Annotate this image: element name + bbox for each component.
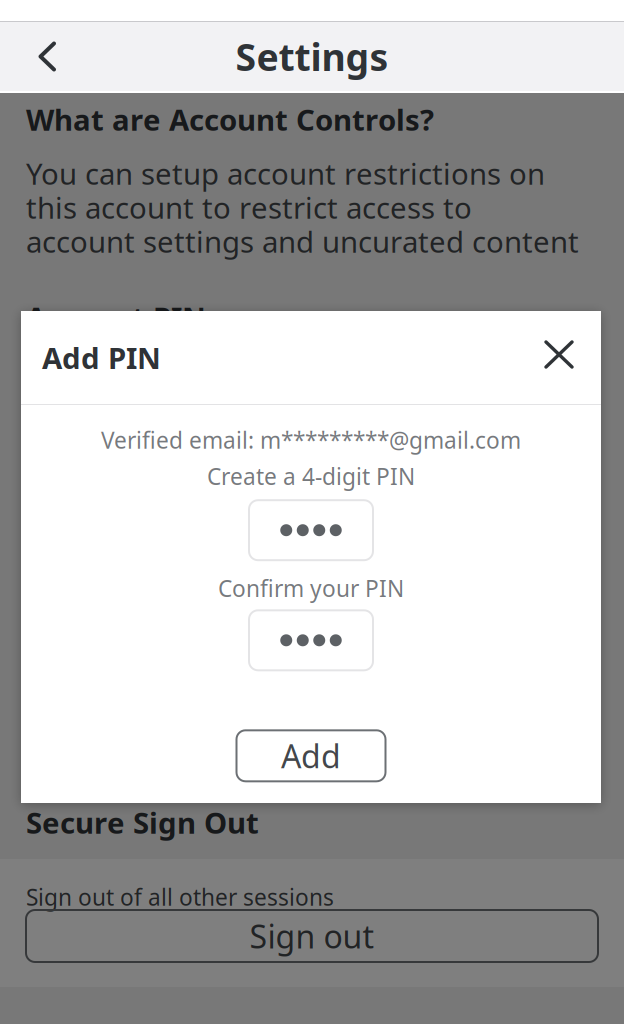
staticText: Confirm your PIN xyxy=(218,573,404,603)
button[interactable]: Add xyxy=(236,730,385,781)
staticText: What are Account Controls? xyxy=(26,100,434,139)
staticText: Verified email: m*********@gmail.com xyxy=(101,425,521,455)
staticText: Create a 4-digit PIN xyxy=(207,461,415,491)
button[interactable]: Close xyxy=(544,340,601,375)
staticText: account settings and uncurated content xyxy=(26,222,579,261)
staticText: Add xyxy=(281,735,341,777)
staticText: Secure Sign Out xyxy=(26,803,259,842)
button[interactable]: Sign out xyxy=(26,910,598,962)
staticText: Sign out xyxy=(249,915,374,957)
staticText: this account to restrict access to xyxy=(26,188,472,227)
staticText: Settings xyxy=(235,32,388,81)
button[interactable]: Back xyxy=(20,29,74,83)
staticText: Add PIN xyxy=(42,338,161,377)
staticText: Sign out of all other sessions xyxy=(26,882,334,912)
staticText: Account PIN xyxy=(26,298,206,337)
staticText: You can setup account restrictions on xyxy=(26,154,545,193)
